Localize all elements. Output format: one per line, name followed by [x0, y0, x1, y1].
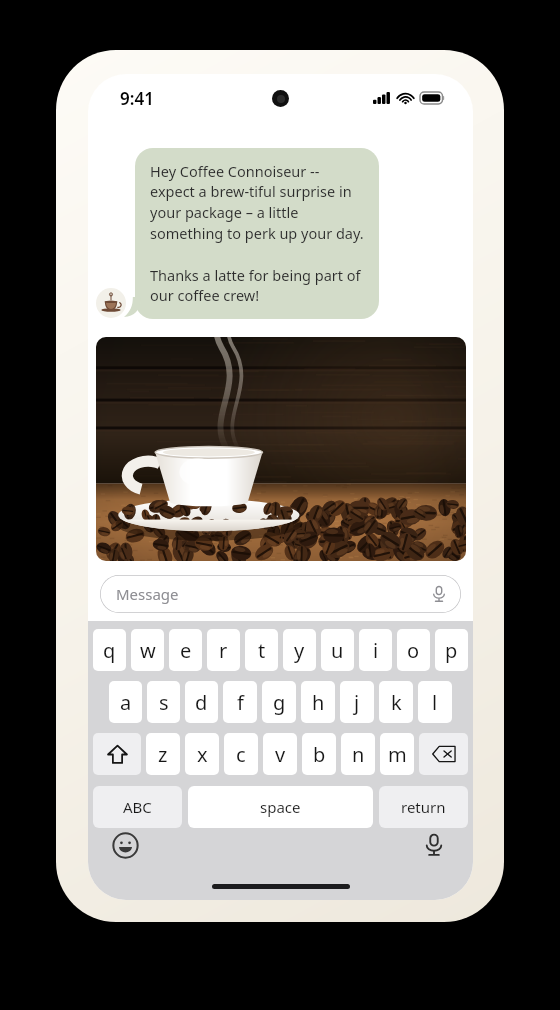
button[interactable]: x	[185, 733, 219, 775]
button[interactable]: b	[302, 733, 336, 775]
button[interactable]: f	[223, 681, 257, 723]
button[interactable]: k	[379, 681, 413, 723]
button[interactable]: Message	[100, 575, 461, 613]
button[interactable]: w	[131, 629, 164, 671]
button[interactable]: Voice input	[428, 583, 450, 605]
staticText: c	[236, 741, 246, 768]
button[interactable]: u	[321, 629, 354, 671]
staticText: Message	[116, 584, 179, 604]
staticText: b	[313, 741, 326, 768]
button[interactable]: d	[185, 681, 218, 723]
button[interactable]: z	[146, 733, 180, 775]
button[interactable]: Shift	[93, 733, 141, 775]
staticText: w	[140, 637, 156, 664]
staticText: i	[373, 637, 379, 664]
button[interactable]: p	[435, 629, 468, 671]
staticText: y	[294, 637, 305, 664]
button[interactable]: h	[301, 681, 335, 723]
button[interactable]: l	[418, 681, 452, 723]
staticText: e	[180, 637, 192, 664]
button[interactable]: a	[109, 681, 142, 723]
button[interactable]: j	[340, 681, 374, 723]
staticText: Thanks a latte for being part of our cof…	[150, 265, 361, 306]
staticText: n	[352, 741, 365, 768]
staticText: r	[219, 637, 228, 664]
staticText: j	[354, 689, 360, 716]
button[interactable]: space	[188, 786, 373, 828]
staticText: t	[258, 637, 266, 664]
staticText: m	[388, 741, 407, 768]
staticText: p	[445, 637, 458, 664]
button[interactable]: Coffee cup photo	[96, 337, 466, 561]
button[interactable]: return	[379, 786, 468, 828]
staticText: x	[197, 741, 208, 768]
button[interactable]: Hey Coffee Connoiseur -- expect a brew-t…	[135, 148, 379, 319]
button[interactable]: o	[397, 629, 430, 671]
staticText: l	[432, 689, 438, 716]
button[interactable]: s	[147, 681, 180, 723]
button[interactable]: m	[380, 733, 414, 775]
button[interactable]: n	[341, 733, 375, 775]
button[interactable]: r	[207, 629, 240, 671]
button[interactable]: v	[263, 733, 297, 775]
staticText: k	[391, 689, 402, 716]
button[interactable]: q	[93, 629, 126, 671]
staticText: 9:41	[120, 87, 154, 110]
staticText: ABC	[123, 797, 152, 817]
button[interactable]: y	[283, 629, 316, 671]
staticText: z	[158, 741, 168, 768]
staticText: o	[407, 637, 420, 664]
button[interactable]: Emoji	[112, 832, 139, 859]
staticText: space	[260, 797, 301, 817]
button[interactable]: Backspace	[419, 733, 468, 775]
staticText: return	[401, 797, 446, 817]
staticText: f	[237, 689, 244, 716]
staticText: q	[103, 637, 116, 664]
staticText: g	[273, 689, 286, 716]
button[interactable]: i	[359, 629, 392, 671]
button[interactable]: Sender avatar	[96, 288, 126, 318]
button[interactable]: Dictation	[419, 830, 449, 860]
staticText: a	[120, 689, 132, 716]
staticText: s	[159, 689, 169, 716]
staticText: u	[331, 637, 344, 664]
button[interactable]: c	[224, 733, 258, 775]
button[interactable]: g	[262, 681, 296, 723]
button[interactable]: e	[169, 629, 202, 671]
button[interactable]: t	[245, 629, 278, 671]
staticText: v	[275, 741, 286, 768]
staticText: d	[195, 689, 208, 716]
staticText: Hey Coffee Connoiseur -- expect a brew-t…	[150, 161, 364, 244]
button[interactable]: ABC	[93, 786, 182, 828]
staticText: h	[312, 689, 325, 716]
